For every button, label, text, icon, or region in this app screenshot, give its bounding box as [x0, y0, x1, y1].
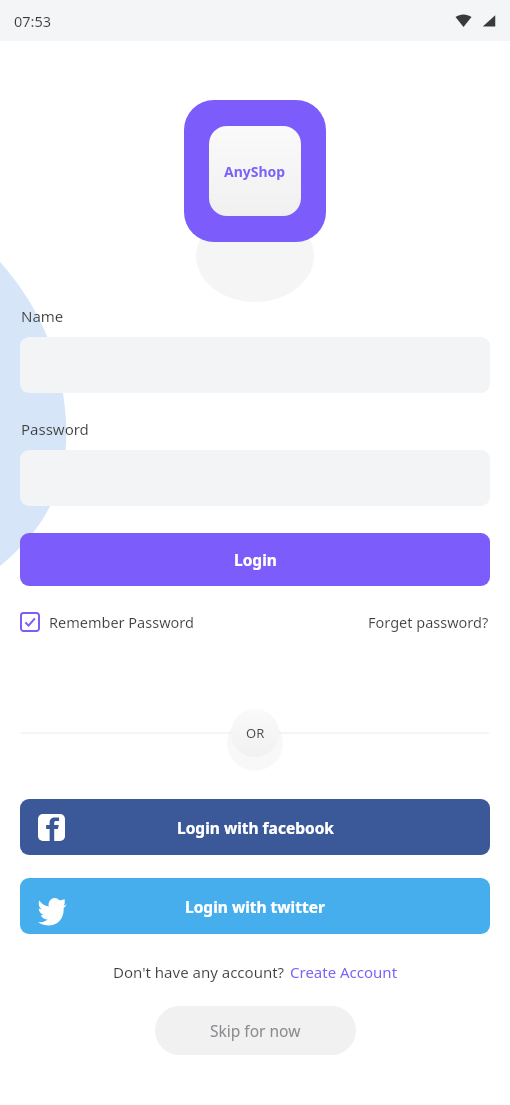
button[interactable]: Skip for now: [155, 1006, 356, 1055]
staticText: Password: [21, 419, 89, 439]
staticText: Don't have any account?: [113, 962, 285, 982]
staticText: Name: [21, 306, 64, 326]
staticText: Skip for now: [210, 1020, 301, 1041]
button[interactable]: Forget password?: [368, 612, 489, 632]
button[interactable]: Login: [20, 533, 490, 586]
staticText: Create Account: [290, 962, 398, 982]
button[interactable]: Create Account: [290, 962, 398, 982]
button[interactable]: Remember Password: [21, 612, 194, 632]
staticText: Login with facebook: [177, 817, 334, 838]
staticText: OR: [246, 724, 265, 742]
staticText: AnyShop: [224, 162, 286, 181]
button[interactable]: Login with twitter: [20, 878, 490, 934]
staticText: 07:53: [14, 11, 52, 31]
staticText: Login with twitter: [185, 896, 325, 917]
staticText: Remember Password: [49, 612, 194, 632]
staticText: Login: [234, 549, 277, 570]
button[interactable]: Login with facebook: [20, 799, 490, 855]
staticText: Forget password?: [368, 612, 489, 632]
